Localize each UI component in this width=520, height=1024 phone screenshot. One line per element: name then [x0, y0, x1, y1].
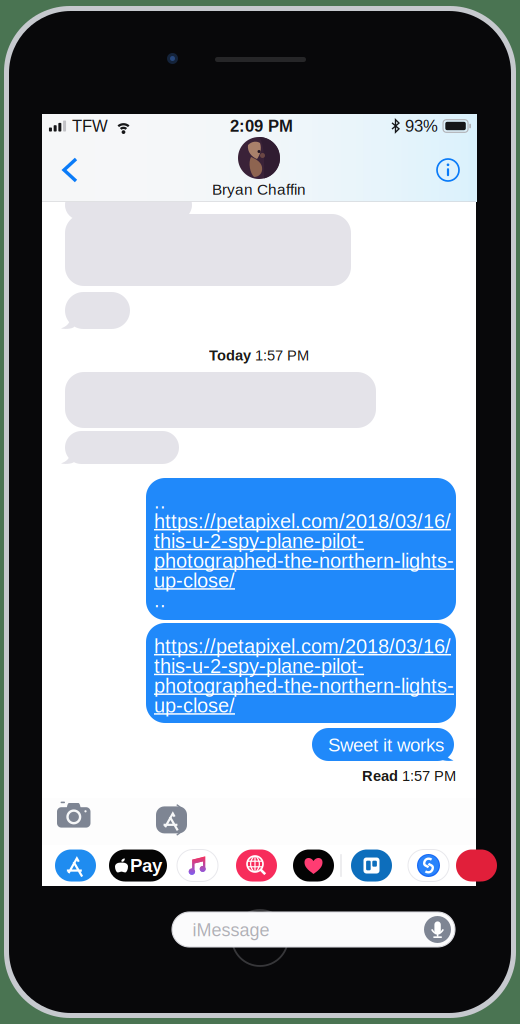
- staticText: up-close/: [154, 569, 235, 592]
- staticText: https://petapixel.com/2018/03/16/: [154, 635, 451, 657]
- staticText: TFW: [72, 117, 108, 135]
- staticText: 93%: [405, 117, 438, 135]
- button[interactable]: Back: [47, 147, 93, 193]
- staticText: 2:09 PM: [230, 117, 293, 135]
- staticText: ..: [154, 589, 166, 611]
- staticText: Pay: [130, 855, 162, 876]
- staticText: Sweet it works: [328, 735, 444, 755]
- button[interactable]: Music: [168, 845, 227, 886]
- staticText: photographed-the-northern-lights-: [154, 550, 454, 572]
- staticText: ..: [154, 490, 166, 513]
- staticText: https://petapixel.com/2018/03/16/: [154, 510, 451, 532]
- staticText: this-u-2-spy-plane-pilot-: [154, 655, 364, 677]
- button[interactable]: Bryan Chaffin: [179, 137, 339, 197]
- button[interactable]: Camera: [57, 799, 99, 839]
- button[interactable]: Apple Pay: [107, 845, 169, 886]
- staticText: Today 1:57 PM: [209, 347, 309, 363]
- button[interactable]: More apps: [456, 845, 478, 886]
- button[interactable]: Shazam: [399, 845, 458, 886]
- button[interactable]: App Store: [46, 845, 105, 886]
- button[interactable]: App Store: [156, 804, 196, 836]
- button[interactable]: Details: [425, 147, 471, 193]
- staticText: Bryan Chaffin: [212, 181, 306, 198]
- staticText: photographed-the-northern-lights-: [154, 675, 454, 697]
- button[interactable]: iMessage: [172, 912, 455, 947]
- staticText: Read 1:57 PM: [362, 768, 456, 784]
- button[interactable]: Trello: [342, 845, 401, 886]
- staticText: iMessage: [192, 920, 269, 940]
- staticText: up-close/: [154, 694, 235, 717]
- button[interactable]: Search: [227, 845, 286, 886]
- staticText: this-u-2-spy-plane-pilot-: [154, 530, 364, 552]
- button[interactable]: Activity: [284, 845, 343, 886]
